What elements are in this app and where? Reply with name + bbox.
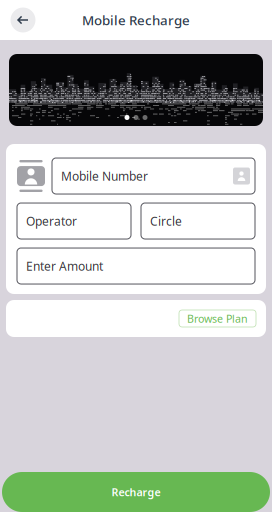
staticText: Enter Amount (26, 258, 103, 274)
button[interactable]: Browse Plan (179, 310, 256, 327)
staticText: Browse Plan (187, 311, 248, 326)
button[interactable]: Back (6, 3, 40, 37)
staticText: Circle (150, 213, 182, 229)
staticText: Recharge (111, 485, 160, 499)
staticText: Operator (26, 213, 77, 229)
staticText: Mobile Number (61, 168, 148, 184)
button[interactable]: Recharge (2, 472, 270, 512)
staticText: Mobile Recharge (82, 11, 190, 29)
